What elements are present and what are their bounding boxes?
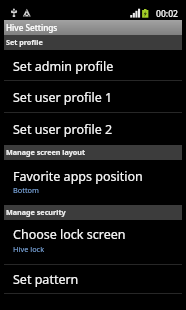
- button[interactable]: Set user profile 1: [4, 81, 182, 112]
- button[interactable]: Choose lock screen: [4, 220, 182, 264]
- staticText: Set user profile 1: [13, 89, 113, 106]
- staticText: Set pattern: [13, 271, 79, 288]
- staticText: Hive Settings: [6, 22, 58, 33]
- staticText: Set admin profile: [13, 58, 114, 75]
- button[interactable]: Hive Settings: [4, 20, 182, 35]
- staticText: Manage security: [6, 207, 66, 217]
- button[interactable]: Manage screen layout: [4, 145, 182, 160]
- button[interactable]: Set pattern: [4, 265, 182, 294]
- staticText: 00:02: [156, 8, 179, 20]
- staticText: Choose lock screen: [13, 226, 126, 243]
- staticText: Bottom: [13, 185, 39, 195]
- staticText: Favorite apps position: [13, 168, 143, 185]
- button[interactable]: Manage security: [4, 205, 182, 220]
- button[interactable]: Set admin profile: [4, 50, 182, 81]
- button[interactable]: Set user profile 2: [4, 113, 182, 144]
- button[interactable]: Set profile: [4, 35, 182, 50]
- button[interactable]: Favorite apps position: [4, 160, 182, 205]
- staticText: Manage screen layout: [6, 147, 86, 157]
- staticText: Set user profile 2: [13, 121, 113, 138]
- staticText: Hive lock: [13, 244, 45, 254]
- staticText: Set profile: [6, 37, 43, 47]
